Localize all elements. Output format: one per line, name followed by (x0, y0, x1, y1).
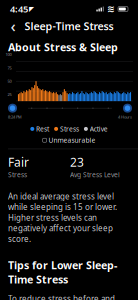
staticText: 25 (7, 92, 11, 97)
staticText: Tips for Lower Sleep-Time Stress (8, 258, 117, 286)
button[interactable]: Back (4, 18, 22, 34)
staticText: Active (90, 124, 108, 133)
staticText: Stress (8, 170, 27, 179)
staticText: About Stress & Sleep (8, 40, 118, 54)
staticText: ≋ (107, 4, 115, 14)
staticText: Stress (60, 124, 79, 133)
staticText: Unmeasurable (48, 136, 95, 145)
staticText: 50 (7, 78, 11, 84)
staticText: Fair (8, 154, 29, 170)
staticText: 23 (70, 154, 84, 170)
staticText: 100 (5, 52, 11, 57)
staticText: ‹ (10, 15, 15, 37)
staticText: 0 (9, 105, 11, 110)
staticText: 75 (7, 65, 11, 70)
staticText: 4:45 (10, 3, 28, 15)
staticText: Sleep-Time Stress (24, 19, 113, 33)
staticText: Rest (36, 124, 49, 133)
staticText: 4 Hours (118, 114, 132, 119)
staticText: Avg Stress Level (70, 170, 120, 179)
staticText: To reduce stress before and during sleep… (8, 293, 126, 300)
staticText: ◤ (29, 5, 34, 13)
staticText: 8:24 PM (8, 114, 22, 119)
staticText: An ideal average stress level while slee… (8, 191, 117, 244)
